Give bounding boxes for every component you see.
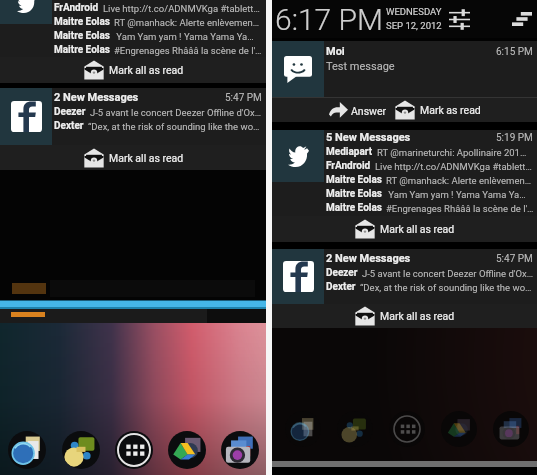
staticText: Test message [326,60,395,73]
staticText: Dexter [326,281,356,293]
staticText: Answer [351,105,387,117]
button[interactable]: Answer [329,102,387,119]
button[interactable] [221,431,259,469]
staticText: 5:47 PM [496,253,533,265]
staticText: RT @marineturchi: Apollinaire 201… [377,147,527,158]
staticText: Mark as read [420,104,481,116]
staticText: Live http://t.co/ADNMVKga #tablett… [103,3,260,14]
button[interactable] [389,411,425,447]
staticText: 2 New Messages [54,91,139,104]
staticText: Dexter [54,120,84,132]
staticText: Maitre Eolas [54,16,110,28]
button[interactable]: Quick settings [445,5,473,33]
staticText: 6:15 PM [496,46,533,58]
staticText: 2 New Messages [326,252,411,265]
button[interactable]: 2 New Messages [0,88,266,145]
staticText: RT @manhack: Alerte enlèvemen… [386,175,532,186]
staticText: Yam Yam yam ! Yama Yama Ya… [386,189,526,200]
staticText: WEDNESDAY [386,6,442,17]
button[interactable] [8,431,46,469]
button[interactable] [441,411,477,447]
staticText: Live http://t.co/ADNMVKga #tablett… [375,161,532,172]
staticText: FrAndroid [54,2,99,14]
button[interactable] [62,431,100,469]
staticText: “Dex, at the risk of sounding like the w… [88,121,260,132]
staticText: 5:19 PM [496,132,533,144]
staticText: Yam Yam yam ! Yama Yama Ya… [114,31,254,42]
button[interactable]: Mark as read [394,100,481,120]
button[interactable]: Mark all as read [272,216,537,242]
button[interactable]: Moi [272,41,537,97]
button[interactable] [285,411,321,447]
button[interactable] [168,431,206,469]
staticText: FrAndroid [326,160,371,172]
staticText: Mark all as read [109,152,184,164]
staticText: Maitre Eolas [326,174,382,186]
staticText: #Engrenages Rhâââ la scène de l'… [114,45,262,56]
staticText: Maitre Eolas [54,44,110,56]
button[interactable] [493,411,529,447]
staticText: J-5 avant le concert Deezer Offline d'Ox… [90,107,262,118]
staticText: RT @manhack: Alerte enlèvemen… [114,17,260,28]
staticText: Maitre Eolas [326,202,382,214]
staticText: 6:17 PM [275,2,383,37]
staticText: 5:47 PM [225,92,262,104]
staticText: Maitre Eolas [326,188,382,200]
staticText: Mark all as read [380,310,455,322]
staticText: J-5 avant le concert Deezer Offline d'Ox… [362,268,533,279]
button[interactable]: 2 New Messages [272,249,537,304]
staticText: Mark all as read [109,64,184,76]
staticText: Moi [326,45,345,58]
button[interactable]: FrAndroid [0,0,266,57]
button[interactable]: Mark all as read [0,145,266,170]
staticText: 5 New Messages [326,131,411,144]
staticText: Maitre Eolas [54,30,110,42]
staticText: “Dex, at the risk of sounding like the w… [360,282,532,293]
button[interactable] [337,411,373,447]
button[interactable] [115,431,153,469]
button[interactable]: Mark all as read [0,57,266,83]
staticText: #Engrenages Rhâââ la scène de l'… [386,203,533,214]
button[interactable]: Clear all notifications [508,5,536,33]
button[interactable]: 5 New Messages [272,130,537,216]
staticText: SEP 12, 2012 [386,20,442,31]
staticText: Deezer [326,267,358,279]
staticText: Mark all as read [380,223,455,235]
button[interactable]: Mark all as read [272,304,537,328]
staticText: Mediapart [326,146,373,158]
staticText: Deezer [54,106,86,118]
